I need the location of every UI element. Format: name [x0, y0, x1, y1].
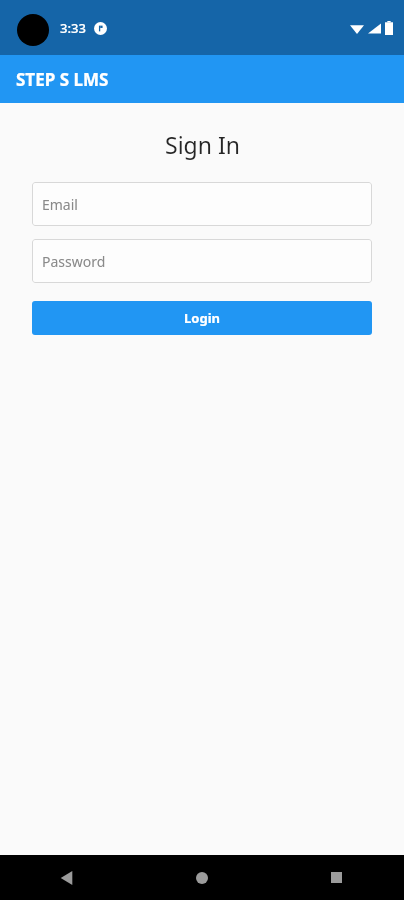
staticText: Login [184, 309, 220, 327]
staticText: 3:33 [60, 19, 86, 37]
button[interactable]: Back [0, 855, 134, 900]
staticText: Sign In [165, 129, 240, 160]
staticText: Password [42, 252, 106, 271]
button[interactable]: Recent apps [269, 855, 404, 900]
staticText: STEP S LMS [16, 68, 109, 91]
button[interactable]: Home [134, 855, 269, 900]
staticText: Email [42, 195, 78, 214]
button[interactable]: Login [32, 301, 372, 335]
button[interactable]: Email [32, 182, 372, 226]
button[interactable]: Password [32, 239, 372, 283]
